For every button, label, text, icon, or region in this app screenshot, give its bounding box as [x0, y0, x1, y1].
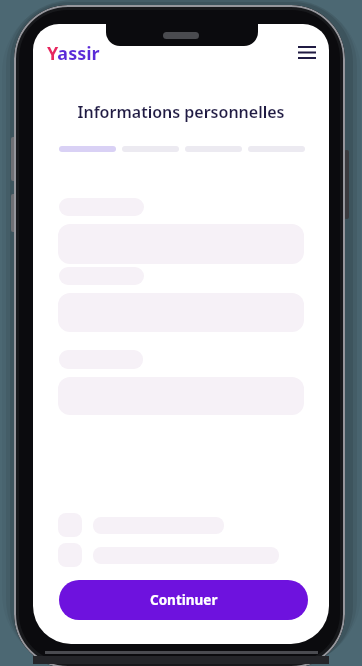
staticText: Informations personnelles [33, 101, 329, 123]
staticText: Continuer [150, 591, 218, 609]
button[interactable] [298, 46, 316, 59]
button[interactable]: Yassir [47, 41, 100, 66]
button[interactable]: Continuer [59, 580, 308, 620]
button[interactable] [58, 513, 82, 537]
button[interactable] [58, 543, 82, 567]
